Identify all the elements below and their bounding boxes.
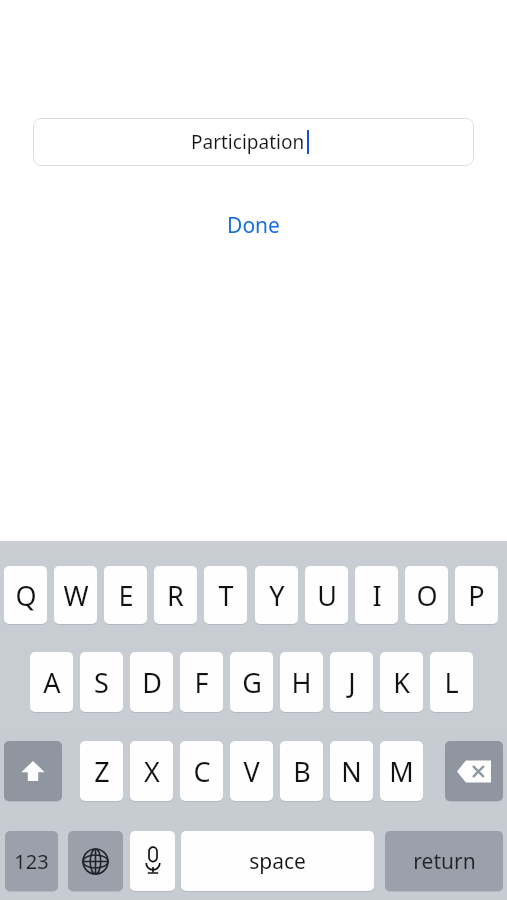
- staticText: Z: [94, 753, 110, 790]
- staticText: G: [242, 664, 262, 701]
- button[interactable]: D: [130, 652, 173, 712]
- staticText: space: [249, 847, 306, 876]
- staticText: 123: [14, 848, 49, 875]
- staticText: P: [468, 577, 485, 614]
- staticText: Participation: [191, 129, 305, 155]
- staticText: H: [291, 664, 312, 701]
- button[interactable]: L: [430, 652, 473, 712]
- staticText: V: [243, 753, 260, 790]
- staticText: Y: [269, 577, 285, 614]
- staticText: M: [389, 753, 414, 790]
- button[interactable]: R: [154, 566, 197, 624]
- button[interactable]: T: [204, 566, 247, 624]
- button[interactable]: I: [355, 566, 398, 624]
- button[interactable]: Shift: [4, 741, 62, 801]
- staticText: E: [118, 577, 134, 614]
- staticText: W: [63, 577, 89, 614]
- staticText: C: [193, 753, 211, 790]
- button[interactable]: O: [405, 566, 448, 624]
- button[interactable]: P: [455, 566, 498, 624]
- staticText: R: [167, 577, 184, 614]
- button[interactable]: E: [104, 566, 147, 624]
- staticText: U: [317, 577, 337, 614]
- staticText: Q: [15, 577, 37, 614]
- button[interactable]: W: [54, 566, 97, 624]
- button[interactable]: V: [230, 741, 273, 801]
- staticText: T: [218, 577, 234, 614]
- staticText: O: [416, 577, 438, 614]
- button[interactable]: Z: [80, 741, 123, 801]
- button[interactable]: return: [385, 831, 503, 891]
- staticText: L: [444, 664, 459, 701]
- button[interactable]: A: [30, 652, 73, 712]
- button[interactable]: H: [280, 652, 323, 712]
- button[interactable]: 123: [5, 831, 58, 891]
- staticText: return: [413, 847, 476, 876]
- staticText: I: [372, 577, 382, 614]
- staticText: F: [194, 664, 209, 701]
- button[interactable]: G: [230, 652, 273, 712]
- button[interactable]: Voice input: [130, 831, 175, 891]
- button[interactable]: K: [380, 652, 423, 712]
- button[interactable]: M: [380, 741, 423, 801]
- button[interactable]: space: [181, 831, 374, 891]
- staticText: N: [341, 753, 362, 790]
- staticText: B: [293, 753, 311, 790]
- button[interactable]: Switch keyboard language: [68, 831, 123, 891]
- button[interactable]: N: [330, 741, 373, 801]
- button[interactable]: F: [180, 652, 223, 712]
- button[interactable]: S: [80, 652, 123, 712]
- button[interactable]: U: [305, 566, 348, 624]
- staticText: D: [142, 664, 162, 701]
- button[interactable]: Y: [255, 566, 298, 624]
- button[interactable]: Participation: [33, 118, 474, 166]
- staticText: Done: [227, 211, 280, 240]
- button[interactable]: B: [280, 741, 323, 801]
- button[interactable]: J: [330, 652, 373, 712]
- staticText: A: [43, 664, 61, 701]
- button[interactable]: Q: [4, 566, 47, 624]
- button[interactable]: C: [180, 741, 223, 801]
- button[interactable]: Done: [0, 208, 507, 242]
- staticText: S: [94, 664, 109, 701]
- button[interactable]: X: [130, 741, 173, 801]
- staticText: X: [144, 753, 160, 790]
- staticText: J: [348, 664, 356, 701]
- staticText: K: [393, 664, 410, 701]
- button[interactable]: Backspace: [445, 741, 503, 801]
